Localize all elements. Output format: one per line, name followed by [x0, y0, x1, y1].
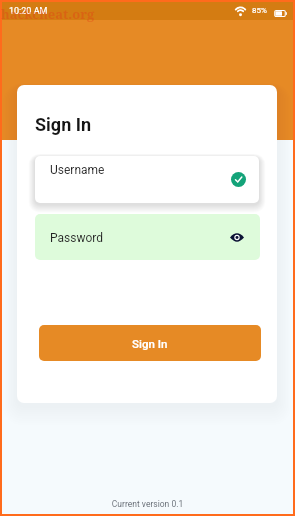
staticText: Username: [50, 163, 105, 177]
button[interactable]: Password: [35, 214, 260, 260]
other: Show password: [230, 233, 244, 242]
button[interactable]: Username: [35, 156, 259, 203]
staticText: Password: [50, 231, 104, 245]
staticText: hackcheat.org: [1, 5, 95, 23]
other: Wi-Fi: [234, 6, 247, 16]
staticText: Current version 0.1: [0, 499, 295, 509]
other: Battery 85 percent: [273, 9, 287, 18]
staticText: Sign In: [35, 114, 92, 135]
staticText: 85%: [252, 6, 267, 15]
staticText: Sign In: [132, 337, 168, 350]
other: Username accepted: [231, 172, 246, 187]
button[interactable]: Sign In: [39, 325, 261, 361]
staticText: 10:20 AM: [9, 6, 48, 17]
button[interactable]: Show password: [229, 229, 245, 245]
